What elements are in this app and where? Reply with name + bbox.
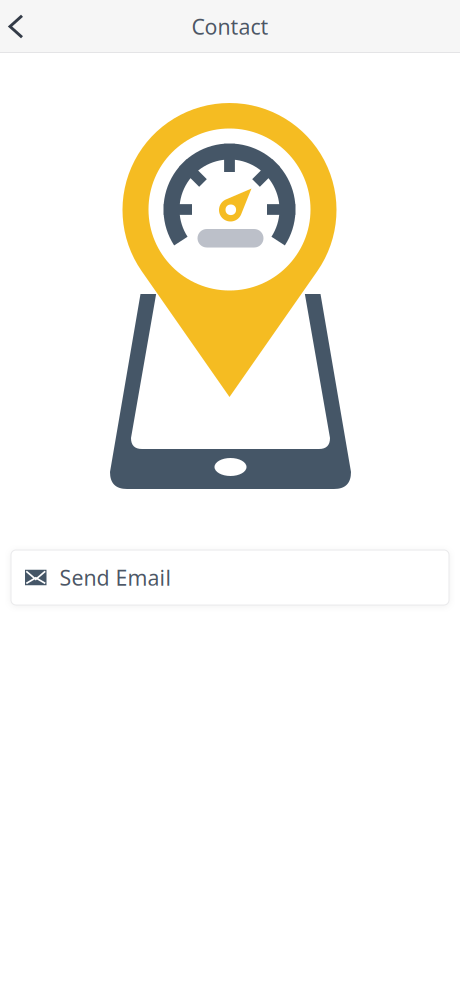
button[interactable]: Send Email bbox=[11, 550, 449, 605]
button[interactable]: Back bbox=[0, 1, 43, 52]
staticText: Contact bbox=[191, 12, 268, 41]
staticText: Send Email bbox=[59, 563, 171, 592]
